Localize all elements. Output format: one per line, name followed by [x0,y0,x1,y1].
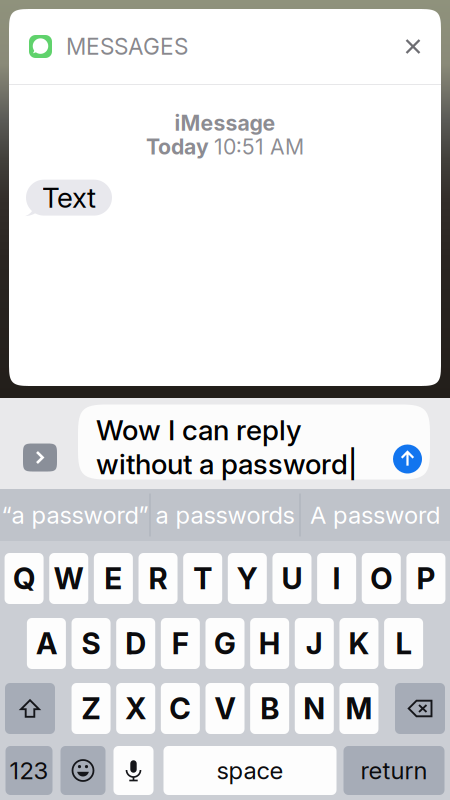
button[interactable]: N [295,683,334,734]
staticText: L [396,626,412,661]
button[interactable]: S [72,618,111,669]
staticText: J [306,626,323,661]
button[interactable]: Send [393,444,422,473]
staticText: H [259,626,281,661]
button[interactable]: Delete [395,683,445,734]
button[interactable]: P [406,553,445,604]
button[interactable]: a passwords [150,489,299,541]
staticText: W [54,561,84,596]
button[interactable]: M [339,683,378,734]
staticText: A [36,626,57,661]
staticText: Wow I can reply without a password| [96,413,357,481]
button[interactable]: O [362,553,401,604]
button[interactable]: E [94,553,133,604]
staticText: a passwords [155,500,294,529]
button[interactable]: R [138,553,177,604]
button[interactable]: W [49,553,88,604]
staticText: C [169,691,191,726]
staticText: F [172,626,189,661]
button[interactable]: Dictation [113,746,153,795]
button[interactable]: F [161,618,200,669]
button[interactable]: space [163,746,336,795]
button[interactable]: J [295,618,334,669]
button[interactable]: T [183,553,222,604]
button[interactable]: return [343,746,444,795]
button[interactable]: U [272,553,311,604]
staticText: 123 [9,756,48,785]
button[interactable]: 123 [5,746,52,795]
staticText: N [303,691,325,726]
button[interactable]: B [250,683,289,734]
button[interactable]: D [116,618,155,669]
button[interactable]: X [116,683,155,734]
button[interactable]: G [205,618,244,669]
staticText: B [260,691,279,726]
staticText: 10:51 AM [214,134,304,160]
staticText: E [104,561,122,596]
staticText: T [193,561,212,596]
staticText: A password [310,500,440,529]
staticText: S [82,626,101,661]
staticText: Y [237,561,258,596]
staticText: iMessage [174,110,275,136]
button[interactable]: Q [5,553,44,604]
staticText: K [348,626,369,661]
button[interactable]: C [161,683,200,734]
button[interactable]: Z [72,683,111,734]
staticText: Q [13,561,35,596]
staticText: Today [146,134,214,160]
staticText: D [125,626,146,661]
staticText: X [125,691,146,726]
button[interactable]: L [384,618,423,669]
staticText: Z [82,691,101,726]
button[interactable]: Close notification [397,30,429,62]
staticText: U [281,561,302,596]
button[interactable]: Emoji [60,746,105,795]
staticText: I [333,561,341,596]
staticText: O [370,561,392,596]
button[interactable]: I [317,553,356,604]
button[interactable]: A password [300,489,449,541]
staticText: V [214,691,235,726]
button[interactable]: Shift [5,683,55,734]
staticText: MESSAGES [66,33,188,60]
button[interactable]: More options [23,443,57,471]
staticText: return [360,756,427,785]
staticText: “a password” [1,500,148,529]
staticText: Text [42,181,96,215]
button[interactable]: “a password” [0,489,149,541]
staticText: space [216,756,283,785]
button[interactable]: H [250,618,289,669]
staticText: P [416,561,435,596]
staticText: M [345,691,372,726]
button[interactable]: A [27,618,66,669]
staticText: G [214,626,236,661]
button[interactable]: V [205,683,244,734]
staticText: R [148,561,167,596]
button[interactable]: Y [228,553,267,604]
button[interactable]: K [339,618,378,669]
